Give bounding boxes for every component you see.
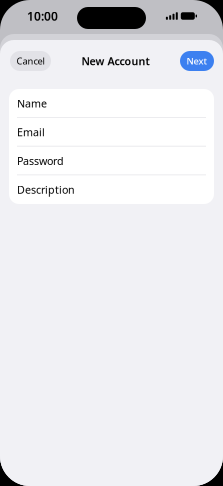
staticText: 10:00 [27,8,58,24]
staticText: Next [186,55,207,67]
staticText: Cancel [16,55,44,67]
staticText: Name [17,96,47,110]
button[interactable]: Email [9,118,214,147]
staticText: New Account [81,54,149,68]
staticText: Description [17,182,75,197]
button[interactable]: Description [9,175,214,204]
staticText: Password [17,154,64,168]
staticText: Email [17,125,45,139]
button[interactable]: Cancel [10,51,51,71]
button[interactable]: Password [9,146,214,175]
button[interactable]: Name [9,89,214,118]
button[interactable]: Next [180,51,214,71]
